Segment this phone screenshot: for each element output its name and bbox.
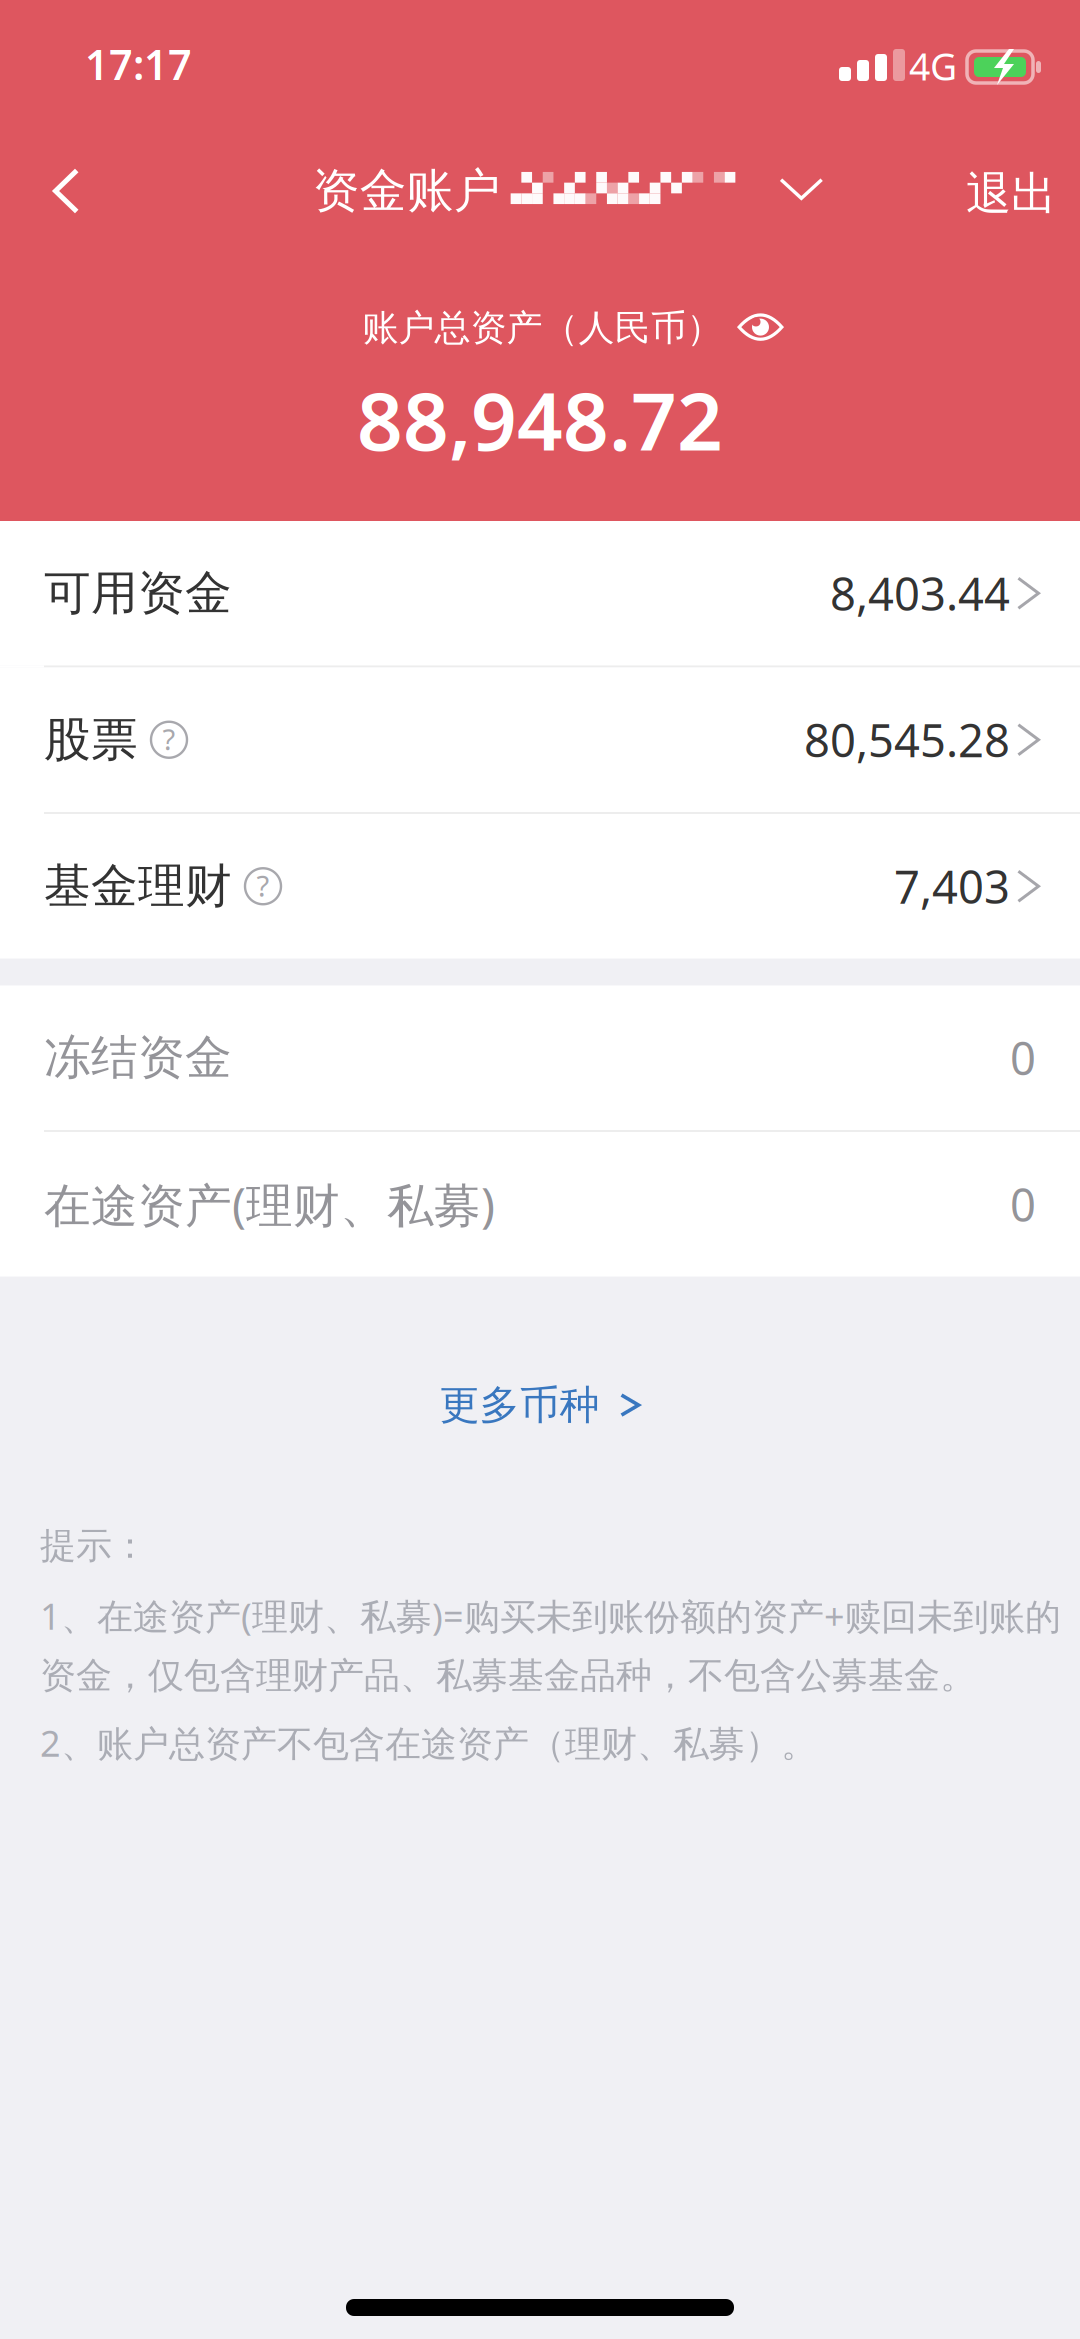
staticText: 提示： <box>40 1524 148 1568</box>
staticText: 80,545.28 <box>804 710 1010 770</box>
staticText: 0 <box>1010 1174 1036 1234</box>
staticText: 4G <box>909 41 957 91</box>
staticText: 2、账户总资产不包含在途资产（理财、私募）。 <box>40 1719 817 1767</box>
staticText: 8,403.44 <box>830 563 1010 623</box>
staticText: ? <box>162 719 175 758</box>
button[interactable]: 退出 <box>930 137 1080 245</box>
staticText: 1、在途资产(理财、私募)=购买未到账份额的资产+赎回未到账的 <box>40 1592 1061 1640</box>
staticText: 7,403 <box>894 856 1010 916</box>
staticText: 资金，仅包含理财产品、私募基金品种，不包含公募基金。 <box>40 1654 976 1698</box>
button[interactable]: 可用资金 <box>0 521 1080 665</box>
button[interactable]: Back <box>0 144 115 238</box>
staticText: 可用资金 <box>44 565 232 622</box>
staticText: 17:17 <box>85 37 192 91</box>
button[interactable]: 股票 <box>0 667 1080 812</box>
staticText: 冻结资金 <box>44 1029 232 1086</box>
staticText: 账户总资产（人民币） <box>362 306 722 350</box>
staticText: 股票 <box>44 711 138 768</box>
staticText: 退出 <box>966 166 1056 222</box>
staticText: 88,948.72 <box>357 366 723 472</box>
staticText: 0 <box>1010 1028 1036 1088</box>
staticText: 在途资产(理财、私募) <box>44 1173 495 1235</box>
staticText: ? <box>256 866 269 905</box>
staticText: 基金理财 <box>44 858 232 915</box>
button[interactable]: 更多币种 <box>389 1354 690 1456</box>
button[interactable]: 基金理财 <box>0 814 1080 958</box>
button[interactable]: 资金账户 <box>313 142 823 240</box>
staticText: 资金账户 <box>313 162 501 220</box>
staticText: 更多币种 <box>439 1380 599 1430</box>
